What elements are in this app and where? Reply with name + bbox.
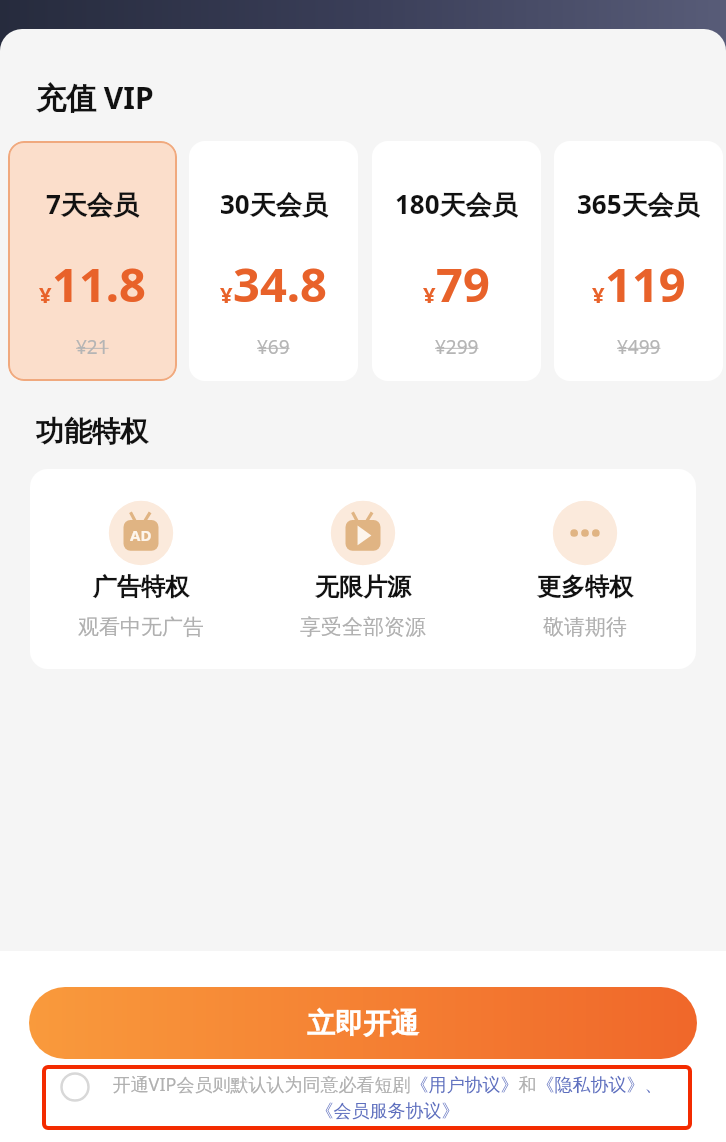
button[interactable]: 7天会员 bbox=[8, 141, 177, 381]
button[interactable]: Agree checkbox bbox=[42, 1065, 692, 1130]
button[interactable]: 广告特权 bbox=[30, 498, 252, 640]
staticText: ¥21 bbox=[76, 334, 109, 360]
other: Agree checkbox bbox=[60, 1072, 90, 1102]
staticText: ¥299 bbox=[435, 334, 479, 360]
staticText: 充值 VIP bbox=[36, 77, 154, 118]
staticText: ¥ bbox=[423, 279, 436, 309]
other: 更多特权 bbox=[550, 498, 620, 568]
staticText: 365天会员 bbox=[577, 186, 700, 222]
staticText: 11.8 bbox=[52, 252, 146, 316]
staticText: ¥ bbox=[592, 279, 605, 309]
staticText: 无限片源 bbox=[315, 572, 411, 602]
other: 无限片源 bbox=[328, 498, 398, 568]
staticText: 观看中无广告 bbox=[78, 614, 204, 640]
button[interactable]: 无限片源 bbox=[252, 498, 474, 640]
staticText: ¥499 bbox=[617, 334, 661, 360]
staticText: ¥69 bbox=[257, 334, 290, 360]
staticText: ¥ bbox=[220, 279, 233, 309]
button[interactable]: 30天会员 bbox=[189, 141, 358, 381]
staticText: 119 bbox=[605, 252, 686, 316]
button[interactable]: 180天会员 bbox=[372, 141, 541, 381]
button[interactable]: 立即开通 bbox=[29, 987, 697, 1059]
staticText: 更多特权 bbox=[537, 572, 633, 602]
staticText: 180天会员 bbox=[395, 186, 518, 222]
staticText: AD bbox=[130, 525, 152, 545]
staticText: 功能特权 bbox=[36, 414, 148, 449]
staticText: 34.8 bbox=[233, 252, 327, 316]
staticText: 开通VIP会员则默认认为同意必看短剧《用户协议》和《隐私协议》、《会员服务协议》 bbox=[97, 1072, 678, 1123]
staticText: 敬请期待 bbox=[543, 614, 627, 640]
staticText: 立即开通 bbox=[307, 1006, 419, 1041]
staticText: 79 bbox=[436, 252, 490, 316]
other: 广告特权 bbox=[106, 498, 176, 568]
staticText: 7天会员 bbox=[46, 186, 139, 222]
staticText: 享受全部资源 bbox=[300, 614, 426, 640]
staticText: ¥ bbox=[39, 279, 52, 309]
button[interactable]: 365天会员 bbox=[554, 141, 723, 381]
staticText: 广告特权 bbox=[93, 572, 189, 602]
staticText: 30天会员 bbox=[220, 186, 328, 222]
button[interactable]: 更多特权 bbox=[474, 498, 696, 640]
